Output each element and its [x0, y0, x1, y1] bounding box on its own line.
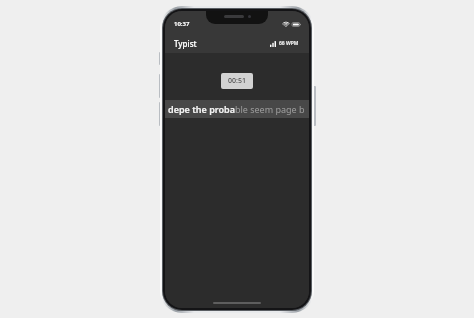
staticText: 66 WPM [279, 40, 299, 47]
button[interactable]: Typing speed statistics [269, 38, 300, 49]
button[interactable]: depe the probable seem page b [165, 100, 309, 118]
staticText: 10:37 [174, 20, 190, 28]
staticText: Typist [174, 38, 197, 49]
staticText: depe the probable seem page b [168, 103, 305, 115]
button[interactable]: 00:51 [221, 73, 253, 89]
staticText: 00:51 [228, 76, 246, 86]
